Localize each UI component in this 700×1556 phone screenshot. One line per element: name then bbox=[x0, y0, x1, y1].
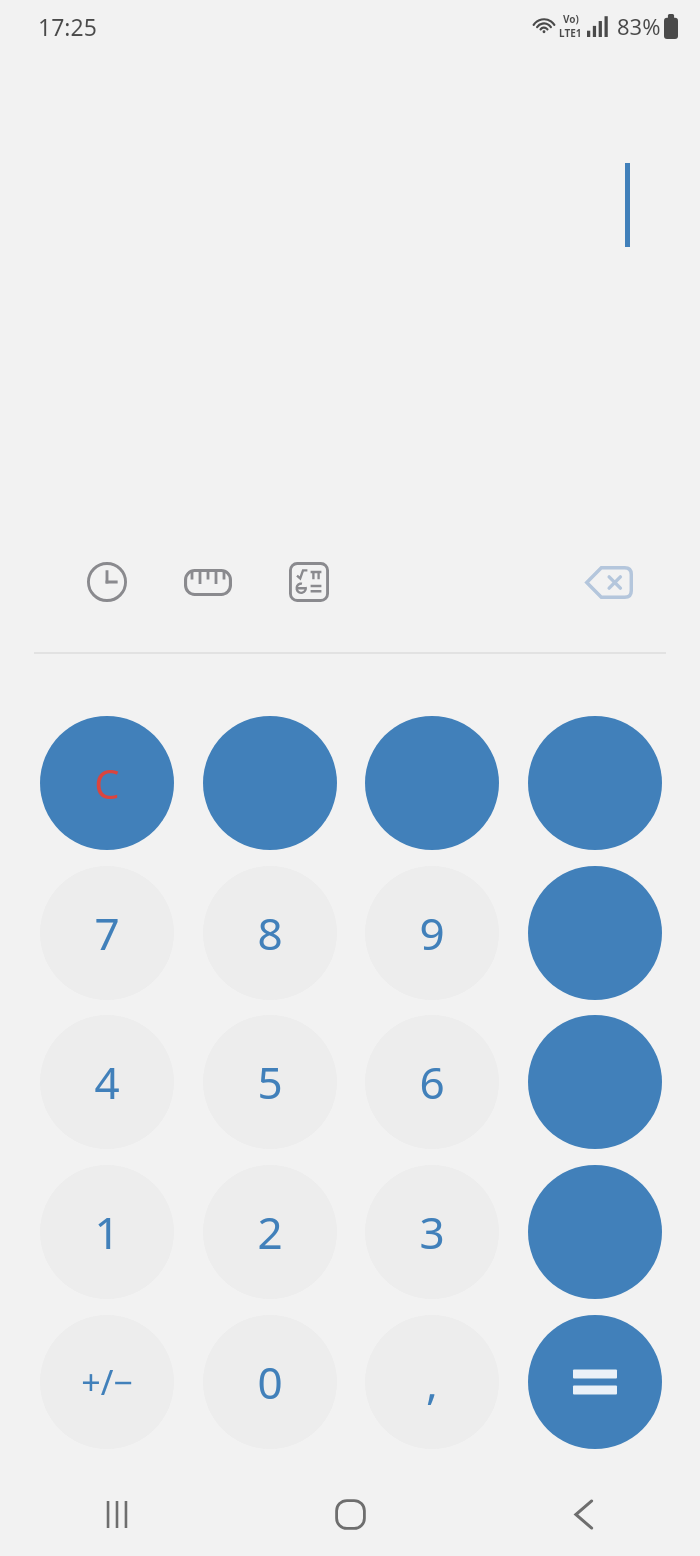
staticText: LTE1 bbox=[559, 26, 582, 40]
button[interactable]: , bbox=[365, 1315, 499, 1449]
staticText: +/− bbox=[81, 1359, 133, 1405]
button[interactable]: Unit converter bbox=[177, 551, 239, 613]
button[interactable]: 8 bbox=[203, 866, 337, 1000]
button[interactable]: Back bbox=[467, 1472, 700, 1556]
button[interactable]: Backspace bbox=[578, 551, 640, 613]
staticText: 8 bbox=[257, 903, 283, 963]
button[interactable]: Operator bbox=[528, 866, 662, 1000]
button[interactable]: Equals bbox=[528, 1315, 662, 1449]
button[interactable]: 9 bbox=[365, 866, 499, 1000]
staticText: C bbox=[94, 756, 120, 810]
staticText: 5 bbox=[257, 1052, 283, 1112]
button[interactable]: Scientific calculator bbox=[278, 551, 340, 613]
button[interactable]: 7 bbox=[40, 866, 174, 1000]
button[interactable]: +/− bbox=[40, 1315, 174, 1449]
button[interactable]: 2 bbox=[203, 1165, 337, 1299]
button[interactable]: 0 bbox=[203, 1315, 337, 1449]
staticText: 6 bbox=[419, 1052, 445, 1112]
button[interactable]: 5 bbox=[203, 1015, 337, 1149]
staticText: 3 bbox=[419, 1202, 445, 1262]
button[interactable]: Operator bbox=[203, 716, 337, 850]
button[interactable]: Operator bbox=[528, 716, 662, 850]
staticText: Vo) bbox=[563, 12, 579, 26]
button[interactable]: History bbox=[76, 551, 138, 613]
button[interactable]: 4 bbox=[40, 1015, 174, 1149]
staticText: 17:25 bbox=[38, 11, 97, 42]
staticText: 4 bbox=[94, 1052, 120, 1112]
button[interactable]: Home bbox=[234, 1472, 467, 1556]
staticText: 2 bbox=[257, 1202, 283, 1262]
button[interactable]: 6 bbox=[365, 1015, 499, 1149]
staticText: , bbox=[426, 1352, 438, 1412]
button[interactable]: 3 bbox=[365, 1165, 499, 1299]
button[interactable]: Operator bbox=[528, 1015, 662, 1149]
button[interactable]: Operator bbox=[528, 1165, 662, 1299]
button[interactable]: Clear bbox=[40, 716, 174, 850]
staticText: 7 bbox=[94, 903, 120, 963]
staticText: 0 bbox=[257, 1352, 283, 1412]
staticText: 1 bbox=[94, 1202, 120, 1262]
staticText: 83% bbox=[617, 11, 661, 41]
button[interactable]: Recent apps bbox=[0, 1472, 234, 1556]
button[interactable]: Operator bbox=[365, 716, 499, 850]
staticText: 9 bbox=[419, 903, 445, 963]
button[interactable]: 1 bbox=[40, 1165, 174, 1299]
